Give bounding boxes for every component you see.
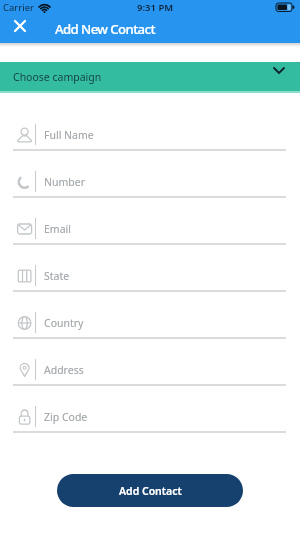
- staticText: State: [44, 269, 70, 283]
- staticText: Choose campaign: [13, 70, 102, 84]
- staticText: Add Contact: [119, 484, 182, 498]
- staticText: Number: [44, 175, 86, 189]
- staticText: Address: [44, 363, 84, 377]
- staticText: Add New Contact: [55, 20, 155, 38]
- staticText: Zip Code: [44, 410, 88, 424]
- staticText: 9:31 PM: [137, 1, 174, 14]
- staticText: Email: [44, 222, 71, 236]
- staticText: Carrier: [3, 1, 34, 14]
- staticText: Country: [44, 316, 84, 330]
- staticText: Full Name: [44, 128, 94, 142]
